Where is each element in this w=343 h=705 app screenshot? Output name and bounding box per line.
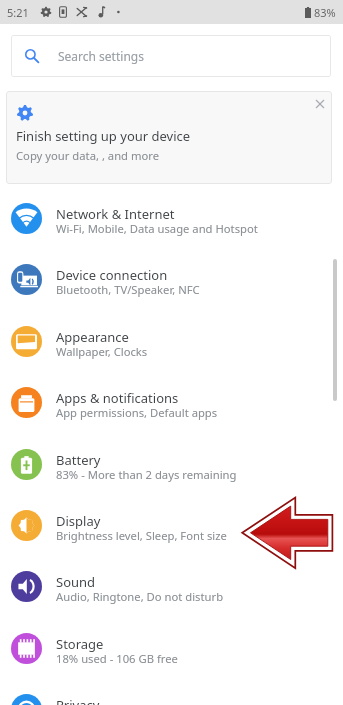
staticText: Audio, Ringtone, Do not disturb (56, 589, 224, 604)
button[interactable]: Sound (0, 556, 343, 617)
staticText: Display (56, 512, 101, 530)
button[interactable]: Apps & notifications (0, 372, 343, 433)
staticText: Device connection (56, 266, 168, 284)
staticText: Bluetooth, TV/Speaker, NFC (56, 282, 200, 297)
button[interactable]: Battery (0, 434, 343, 495)
staticText: Battery (56, 451, 101, 469)
staticText: Network & Internet (56, 205, 175, 223)
staticText: Appearance (56, 328, 129, 346)
staticText: 5:21 (7, 5, 29, 20)
staticText: Search settings (58, 48, 144, 64)
button[interactable]: Device connection (0, 249, 343, 310)
staticText: 83% - More than 2 days remaining (56, 467, 237, 482)
staticText: Wi-Fi, Mobile, Data usage and Hotspot (56, 221, 258, 236)
staticText: Storage (56, 635, 104, 653)
staticText: Copy your data, , and more (16, 148, 160, 163)
button[interactable]: Finish setting up your device (6, 91, 332, 184)
staticText: Brightness level, Sleep, Font size (56, 528, 227, 543)
staticText: Apps & notifications (56, 389, 179, 407)
staticText: 83% (314, 5, 336, 20)
staticText: Wallpaper, Clocks (56, 344, 148, 359)
button[interactable]: Display (0, 495, 343, 556)
staticText: Finish setting up your device (16, 127, 191, 145)
staticText: Sound (56, 573, 96, 591)
staticText: 18% used - 106 GB free (56, 651, 178, 666)
button[interactable]: Appearance (0, 311, 343, 372)
button[interactable]: Storage (0, 618, 343, 679)
button[interactable]: Close (310, 94, 330, 114)
staticText: App permissions, Default apps (56, 405, 218, 420)
staticText: Privacy (56, 696, 100, 705)
button[interactable]: Privacy (0, 679, 343, 705)
button[interactable]: Search settings (11, 35, 331, 77)
button[interactable]: Network & Internet (0, 188, 343, 249)
